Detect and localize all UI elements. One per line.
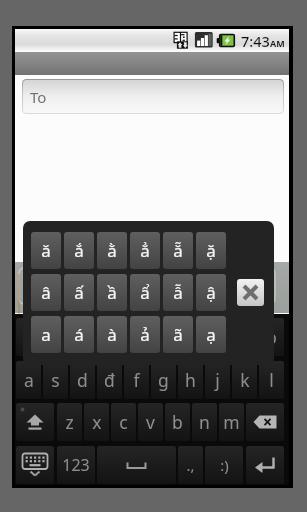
staticText: y	[159, 325, 168, 349]
button[interactable]: j	[205, 361, 230, 399]
staticText: 7:43	[241, 31, 270, 51]
staticText: m	[223, 410, 240, 434]
button[interactable]: ậ	[196, 274, 226, 311]
staticText: ă	[41, 239, 51, 262]
button[interactable]: p	[259, 318, 284, 356]
button[interactable]: e	[70, 318, 95, 356]
button[interactable]: i	[205, 318, 230, 356]
button[interactable]: s	[43, 361, 68, 399]
staticText: .,	[186, 455, 195, 475]
button[interactable]: ẳ	[130, 232, 160, 269]
button[interactable]: m	[219, 403, 244, 441]
button[interactable]: Shift	[16, 403, 54, 441]
button[interactable]: a	[31, 316, 61, 353]
staticText: ả	[140, 323, 150, 346]
staticText: à	[107, 323, 117, 346]
staticText: ã	[173, 323, 183, 346]
button[interactable]: ẫ	[163, 274, 193, 311]
staticText: x	[92, 410, 102, 434]
staticText: ặ	[206, 239, 216, 262]
button[interactable]: ã	[163, 316, 193, 353]
button[interactable]: á	[64, 316, 94, 353]
staticText: l	[269, 368, 274, 392]
staticText: e	[78, 325, 88, 349]
staticText: ẩ	[140, 281, 150, 304]
button[interactable]: z	[57, 403, 82, 441]
staticText: c	[119, 410, 128, 434]
button[interactable]: q	[16, 318, 41, 356]
staticText: s	[51, 368, 60, 392]
button[interactable]: g	[151, 361, 176, 399]
staticText: â	[41, 281, 51, 304]
staticText: r	[106, 325, 114, 349]
button[interactable]: Space	[97, 446, 176, 484]
staticText: u	[185, 325, 196, 349]
button[interactable]: ấ	[64, 274, 94, 311]
button[interactable]: l	[259, 361, 284, 399]
staticText: :)	[220, 455, 229, 475]
staticText: á	[74, 323, 84, 346]
staticText: g	[158, 368, 169, 392]
button[interactable]: ả	[130, 316, 160, 353]
staticText: ắ	[74, 239, 84, 262]
button[interactable]: c	[111, 403, 136, 441]
button[interactable]: f	[124, 361, 149, 399]
button[interactable]: đ	[97, 361, 122, 399]
button[interactable]: k	[232, 361, 257, 399]
staticText: ằ	[107, 239, 117, 262]
staticText: h	[185, 368, 196, 392]
button[interactable]: To	[23, 80, 283, 113]
button[interactable]: u	[178, 318, 203, 356]
button[interactable]: Delete	[246, 403, 284, 441]
button[interactable]: r	[97, 318, 122, 356]
button[interactable]: ằ	[97, 232, 127, 269]
staticText: q	[23, 325, 34, 349]
button[interactable]: à	[97, 316, 127, 353]
staticText: t	[133, 325, 140, 349]
staticText: z	[65, 410, 74, 434]
button[interactable]: w	[43, 318, 68, 356]
staticText: ẳ	[140, 239, 150, 262]
staticText: ẫ	[173, 281, 183, 304]
staticText: AM	[270, 37, 285, 49]
button[interactable]: Close	[237, 279, 264, 306]
button[interactable]: Enter	[246, 446, 284, 484]
button[interactable]: ẩ	[130, 274, 160, 311]
button[interactable]: ẵ	[163, 232, 193, 269]
button[interactable]: v	[138, 403, 163, 441]
button[interactable]: n	[192, 403, 217, 441]
button[interactable]: b	[165, 403, 190, 441]
button[interactable]: ầ	[97, 274, 127, 311]
staticText: a	[41, 323, 51, 346]
button[interactable]: ạ	[196, 316, 226, 353]
staticText: To	[30, 87, 47, 107]
staticText: n	[199, 410, 210, 434]
staticText: w	[49, 325, 63, 349]
staticText: ấ	[74, 281, 84, 304]
staticText: p	[266, 325, 277, 349]
button[interactable]: Switch keyboard	[16, 446, 54, 484]
button[interactable]: h	[178, 361, 203, 399]
staticText: ậ	[206, 281, 216, 304]
staticText: ầ	[107, 281, 117, 304]
button[interactable]: a	[16, 361, 41, 399]
staticText: j	[215, 368, 220, 392]
button[interactable]: y	[151, 318, 176, 356]
button[interactable]: :)	[205, 446, 243, 484]
button[interactable]: ắ	[64, 232, 94, 269]
staticText: 123	[62, 454, 90, 476]
staticText: d	[77, 368, 88, 392]
button[interactable]: 123	[57, 446, 95, 484]
staticText: k	[240, 368, 250, 392]
button[interactable]: t	[124, 318, 149, 356]
button[interactable]: .,	[178, 446, 203, 484]
staticText: đ	[104, 368, 115, 392]
button[interactable]	[19, 268, 275, 304]
button[interactable]: ă	[31, 232, 61, 269]
button[interactable]: d	[70, 361, 95, 399]
button[interactable]: x	[84, 403, 109, 441]
button[interactable]: ặ	[196, 232, 226, 269]
staticText: b	[172, 410, 183, 434]
button[interactable]: â	[31, 274, 61, 311]
